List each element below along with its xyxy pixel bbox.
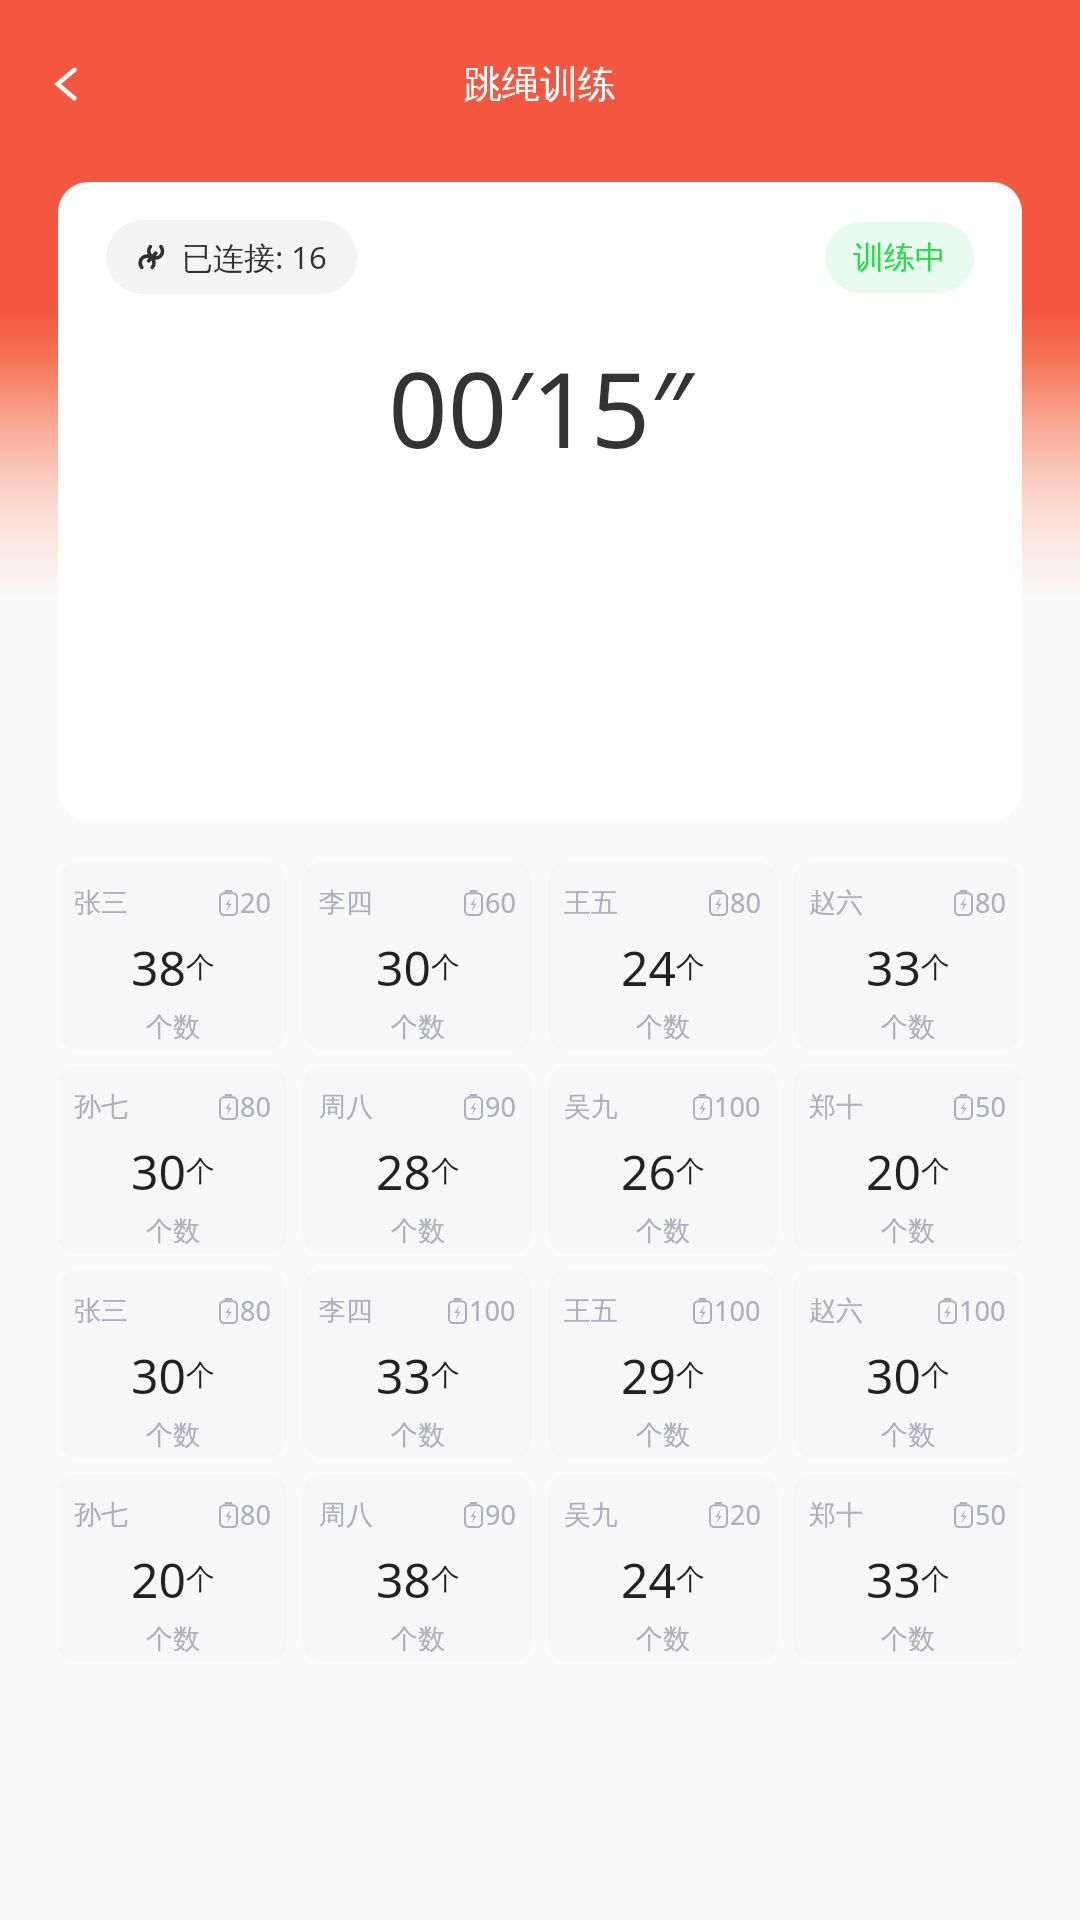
staticText: 张三 xyxy=(74,1294,128,1328)
staticText: 00′15″ xyxy=(388,337,693,479)
staticText: 90 xyxy=(485,1496,516,1533)
staticText: 周八 xyxy=(319,1498,373,1532)
staticText: 王五 xyxy=(564,1294,618,1328)
staticText: 100 xyxy=(469,1292,516,1329)
staticText: 个数 xyxy=(636,1418,690,1452)
staticText: 赵六 xyxy=(809,1294,863,1328)
staticText: 个数 xyxy=(391,1010,445,1044)
staticText: 30 xyxy=(866,1343,921,1408)
staticText: 26 xyxy=(621,1139,676,1204)
staticText: 个 xyxy=(431,1153,460,1190)
staticText: 李四 xyxy=(319,886,373,920)
button[interactable]: 吴九 xyxy=(548,1066,777,1254)
staticText: 20 xyxy=(240,884,271,921)
staticText: 个数 xyxy=(146,1418,200,1452)
staticText: 个 xyxy=(186,1357,215,1394)
staticText: 60 xyxy=(485,884,516,921)
staticText: 33 xyxy=(376,1343,431,1408)
button[interactable]: 周八 xyxy=(303,1474,532,1662)
staticText: 个数 xyxy=(881,1418,935,1452)
staticText: 24 xyxy=(621,1547,676,1612)
staticText: 33 xyxy=(866,1547,921,1612)
staticText: 80 xyxy=(240,1292,271,1329)
staticText: 38 xyxy=(376,1547,431,1612)
staticText: 90 xyxy=(485,1088,516,1125)
staticText: 个 xyxy=(921,1153,950,1190)
staticText: 个数 xyxy=(391,1622,445,1656)
button[interactable]: 孙七 xyxy=(58,1066,287,1254)
staticText: 个数 xyxy=(391,1418,445,1452)
staticText: 个 xyxy=(676,1357,705,1394)
staticText: 郑十 xyxy=(809,1498,863,1532)
staticText: 29 xyxy=(621,1343,676,1408)
button[interactable]: 王五 xyxy=(548,1270,777,1458)
staticText: 郑十 xyxy=(809,1090,863,1124)
staticText: 跳绳训练 xyxy=(464,60,616,108)
staticText: 孙七 xyxy=(74,1498,128,1532)
button[interactable]: 郑十 xyxy=(793,1474,1022,1662)
button[interactable]: 李四 xyxy=(303,862,532,1050)
staticText: 个 xyxy=(431,949,460,986)
staticText: 50 xyxy=(975,1496,1006,1533)
staticText: 个数 xyxy=(636,1622,690,1656)
staticText: 王五 xyxy=(564,886,618,920)
staticText: 80 xyxy=(240,1088,271,1125)
staticText: 张三 xyxy=(74,886,128,920)
staticText: 个 xyxy=(921,1561,950,1598)
staticText: 30 xyxy=(376,935,431,1000)
staticText: 80 xyxy=(975,884,1006,921)
staticText: 80 xyxy=(730,884,761,921)
staticText: 20 xyxy=(730,1496,761,1533)
staticText: 吴九 xyxy=(564,1090,618,1124)
staticText: 100 xyxy=(714,1088,761,1125)
button[interactable]: 赵六 xyxy=(793,1270,1022,1458)
staticText: 28 xyxy=(376,1139,431,1204)
staticText: 周八 xyxy=(319,1090,373,1124)
staticText: 李四 xyxy=(319,1294,373,1328)
button[interactable]: 赵六 xyxy=(793,862,1022,1050)
staticText: 20 xyxy=(131,1547,186,1612)
staticText: 80 xyxy=(240,1496,271,1533)
staticText: 24 xyxy=(621,935,676,1000)
staticText: 个数 xyxy=(636,1214,690,1248)
staticText: 个 xyxy=(186,949,215,986)
button[interactable]: 吴九 xyxy=(548,1474,777,1662)
staticText: 20 xyxy=(866,1139,921,1204)
staticText: 33 xyxy=(866,935,921,1000)
button[interactable]: 孙七 xyxy=(58,1474,287,1662)
staticText: 100 xyxy=(959,1292,1006,1329)
staticText: 个 xyxy=(676,1561,705,1598)
staticText: 赵六 xyxy=(809,886,863,920)
button[interactable]: 训练中 xyxy=(825,222,974,293)
button[interactable]: 已连接: 16 xyxy=(106,220,357,294)
staticText: 个 xyxy=(676,1153,705,1190)
staticText: 训练中 xyxy=(853,238,946,277)
staticText: 个 xyxy=(431,1357,460,1394)
button[interactable]: 周八 xyxy=(303,1066,532,1254)
staticText: 个 xyxy=(921,1357,950,1394)
button[interactable]: 张三 xyxy=(58,1270,287,1458)
button[interactable]: 郑十 xyxy=(793,1066,1022,1254)
staticText: 个数 xyxy=(146,1214,200,1248)
button[interactable]: 张三 xyxy=(58,862,287,1050)
staticText: 50 xyxy=(975,1088,1006,1125)
staticText: 个数 xyxy=(881,1622,935,1656)
staticText: 个数 xyxy=(146,1622,200,1656)
staticText: 个 xyxy=(676,949,705,986)
button[interactable]: Back xyxy=(34,51,100,117)
staticText: 个数 xyxy=(881,1214,935,1248)
staticText: 个数 xyxy=(146,1010,200,1044)
staticText: 孙七 xyxy=(74,1090,128,1124)
button[interactable]: 王五 xyxy=(548,862,777,1050)
staticText: 38 xyxy=(131,935,186,1000)
staticText: 个数 xyxy=(881,1010,935,1044)
staticText: 已连接: 16 xyxy=(182,236,327,278)
staticText: 个 xyxy=(186,1153,215,1190)
staticText: 个 xyxy=(431,1561,460,1598)
staticText: 30 xyxy=(131,1139,186,1204)
staticText: 100 xyxy=(714,1292,761,1329)
staticText: 个数 xyxy=(636,1010,690,1044)
staticText: 个 xyxy=(186,1561,215,1598)
staticText: 个 xyxy=(921,949,950,986)
button[interactable]: 李四 xyxy=(303,1270,532,1458)
